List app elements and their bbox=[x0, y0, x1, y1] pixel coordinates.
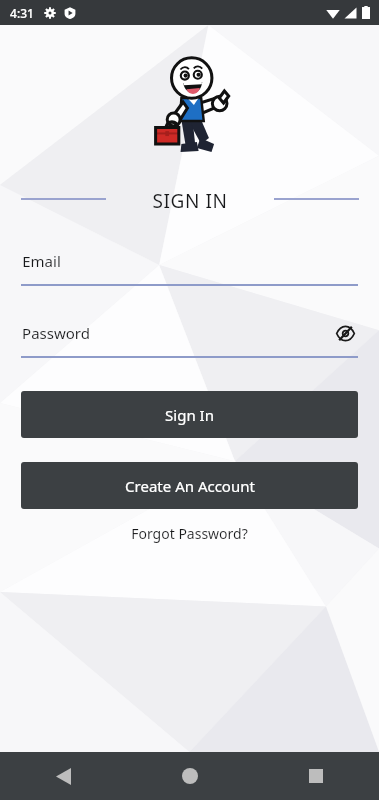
button[interactable]: Sign In bbox=[21, 391, 358, 438]
staticText: 4:31 bbox=[10, 5, 34, 21]
button[interactable]: Home bbox=[127, 752, 253, 800]
staticText: Email bbox=[22, 251, 61, 271]
button[interactable]: Email bbox=[21, 248, 358, 286]
staticText: Password bbox=[22, 323, 90, 343]
button[interactable]: Password bbox=[21, 320, 358, 358]
staticText: SIGN IN bbox=[152, 188, 228, 210]
staticText: Sign In bbox=[165, 405, 214, 425]
staticText: Create An Account bbox=[125, 476, 255, 496]
button[interactable]: Show password bbox=[332, 320, 358, 346]
button[interactable]: Recent apps bbox=[253, 752, 379, 800]
button[interactable]: Back bbox=[0, 752, 127, 800]
button[interactable]: Create An Account bbox=[21, 462, 358, 509]
button[interactable]: Forgot Password? bbox=[121, 520, 258, 547]
staticText: Forgot Password? bbox=[131, 524, 248, 543]
other: App logo bbox=[147, 58, 233, 158]
